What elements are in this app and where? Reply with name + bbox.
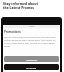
button[interactable]: Subscribe [4, 56, 59, 62]
button[interactable]: Continue [4, 64, 59, 70]
staticText: inbox [29, 25, 35, 28]
staticText: Promotions [4, 30, 21, 34]
staticText: Get the latest deals and offers from you… [4, 36, 57, 48]
staticText: Subscribe [26, 58, 37, 61]
staticText: Continue [26, 66, 37, 69]
staticText: the Latest Promos [3, 5, 34, 9]
staticText: Stay informed about [3, 1, 38, 5]
